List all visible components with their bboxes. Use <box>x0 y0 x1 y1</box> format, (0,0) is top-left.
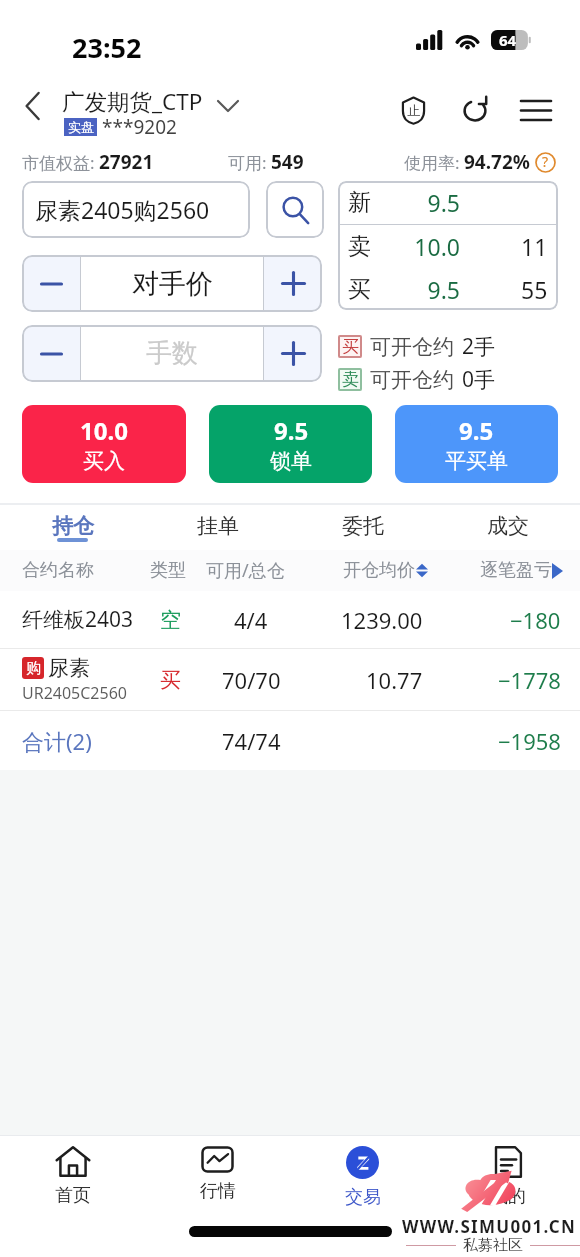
staticText: 逐笔盈亏 <box>480 559 552 582</box>
staticText: 开仓均价 <box>343 559 415 582</box>
staticText: −1778 <box>498 665 561 695</box>
staticText: 10.0 <box>80 414 128 447</box>
staticText: 首页 <box>55 1184 91 1207</box>
button[interactable]: Search contract <box>266 181 324 238</box>
button[interactable]: 9.5 <box>209 405 372 483</box>
staticText: 70/70 <box>222 665 281 695</box>
staticText: 行情 <box>200 1180 236 1203</box>
button[interactable]: 9.5 <box>395 405 558 483</box>
staticText: 类型 <box>150 559 186 582</box>
staticText: 可开仓约 <box>370 367 454 393</box>
button[interactable]: Back <box>11 84 55 128</box>
staticText: 卖 <box>342 369 359 390</box>
button[interactable]: 手数 <box>81 325 263 382</box>
button[interactable]: Refresh <box>453 88 497 132</box>
button[interactable]: 我的 <box>435 1136 580 1224</box>
staticText: 10.77 <box>366 665 423 695</box>
staticText: 55 <box>521 274 548 305</box>
button[interactable]: Decrease 对手价 <box>22 255 80 312</box>
staticText: 锁单 <box>270 448 312 474</box>
button[interactable]: 成交 <box>435 505 580 550</box>
staticText: 10.0 <box>372 231 460 262</box>
staticText: 手数 <box>146 337 198 370</box>
button[interactable]: Menu <box>514 88 558 132</box>
staticText: 委托 <box>342 513 384 539</box>
staticText: −1958 <box>498 726 561 756</box>
staticText: 我的 <box>490 1185 526 1208</box>
staticText: ? <box>542 152 549 171</box>
staticText: 买 <box>160 667 181 693</box>
button[interactable]: Stop loss protection <box>391 88 435 132</box>
staticText: 2手 <box>462 332 496 361</box>
staticText: 23:52 <box>72 29 142 66</box>
button[interactable]: 购 <box>0 649 580 710</box>
staticText: 空 <box>160 607 181 633</box>
button[interactable]: 首页 <box>0 1136 145 1224</box>
staticText: 平买单 <box>445 448 508 474</box>
button[interactable]: Usage help <box>535 152 556 173</box>
staticText: 可开仓约 <box>370 334 454 360</box>
button[interactable]: Increase 手数 <box>264 325 322 382</box>
staticText: UR2405C2560 <box>22 682 127 704</box>
staticText: 0手 <box>462 365 496 394</box>
staticText: 止 <box>407 102 420 118</box>
staticText: 9.5 <box>459 414 494 447</box>
staticText: −180 <box>510 605 561 635</box>
button[interactable]: Decrease 手数 <box>22 325 80 382</box>
staticText: 实盘 <box>68 119 94 135</box>
staticText: 9.5 <box>372 187 460 218</box>
staticText: 可用/总仓 <box>206 558 285 583</box>
button[interactable]: 挂单 <box>145 505 290 550</box>
staticText: WWW.SIMU001.CN <box>402 1215 577 1238</box>
staticText: 市值权益: <box>22 151 99 174</box>
staticText: 合计(2) <box>22 726 92 756</box>
staticText: 使用率: <box>404 151 464 174</box>
staticText: 新 <box>348 188 371 217</box>
staticText: 9.5 <box>372 274 460 305</box>
staticText: 广发期货_CTP <box>62 86 203 117</box>
staticText: ***9202 <box>102 114 177 140</box>
staticText: 买 <box>348 275 371 304</box>
button[interactable]: Increase 对手价 <box>264 255 322 312</box>
button[interactable]: 纤维板2403 <box>0 591 580 648</box>
button[interactable]: 对手价 <box>81 255 263 312</box>
staticText: 94.72% <box>464 149 530 175</box>
staticText: 尿素 <box>48 655 90 681</box>
staticText: 买入 <box>83 448 125 474</box>
staticText: 私募社区 <box>463 1236 523 1255</box>
staticText: 1239.00 <box>341 605 423 635</box>
staticText: 成交 <box>487 513 529 539</box>
button[interactable]: 尿素2405购2560 <box>22 181 250 238</box>
staticText: 购 <box>26 659 41 678</box>
staticText: 74/74 <box>222 726 281 756</box>
button[interactable]: 委托 <box>290 505 435 550</box>
staticText: 对手价 <box>132 267 213 301</box>
staticText: 买 <box>342 336 359 357</box>
button[interactable]: 持仓 <box>0 505 145 550</box>
staticText: 27921 <box>99 149 154 175</box>
staticText: 卖 <box>348 232 371 261</box>
staticText: 11 <box>521 231 548 262</box>
staticText: 合约名称 <box>22 559 94 582</box>
staticText: 9.5 <box>274 414 309 447</box>
staticText: 549 <box>271 149 304 175</box>
staticText: 64 <box>499 30 517 50</box>
button[interactable]: 交易 <box>290 1136 435 1224</box>
staticText: 纤维板2403 <box>22 605 134 634</box>
staticText: 尿素2405购2560 <box>35 194 210 225</box>
staticText: 可用: <box>228 151 271 174</box>
button[interactable]: 行情 <box>145 1136 290 1224</box>
staticText: 交易 <box>345 1186 381 1209</box>
staticText: 4/4 <box>234 605 268 635</box>
button[interactable]: 10.0 <box>22 405 186 483</box>
staticText: 挂单 <box>197 513 239 539</box>
staticText: 持仓 <box>52 513 94 539</box>
